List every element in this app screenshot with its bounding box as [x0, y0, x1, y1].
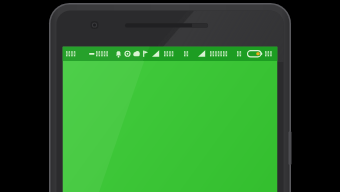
button[interactable]: Phone mockup showing green app screen [0, 0, 340, 192]
